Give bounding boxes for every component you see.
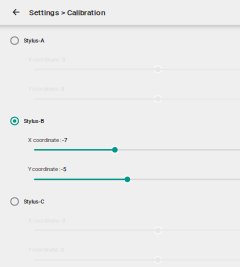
staticText: 0 <box>61 85 64 92</box>
button[interactable]: Stylus-C <box>0 193 240 209</box>
staticText: X coordinate : <box>28 56 62 63</box>
staticText: 0 <box>61 246 64 253</box>
staticText: Stylus-C <box>23 198 44 205</box>
staticText: Y coordinate : <box>28 85 61 92</box>
staticText: Settings > Calibration <box>29 8 105 17</box>
staticText: -7 <box>62 136 67 143</box>
staticText: -5 <box>61 166 66 173</box>
staticText: Stylus-A <box>23 37 44 44</box>
button[interactable]: Back <box>0 0 27 25</box>
staticText: X coordinate : <box>28 217 62 224</box>
button[interactable]: Stylus-A <box>0 33 240 49</box>
staticText: X coordinate : <box>28 137 62 143</box>
staticText: Y coordinate : <box>28 246 61 253</box>
staticText: 0 <box>62 217 65 224</box>
staticText: 0 <box>62 56 65 63</box>
button[interactable]: Stylus-B <box>0 113 240 129</box>
staticText: Stylus-B <box>23 118 44 124</box>
staticText: Y coordinate : <box>28 166 61 172</box>
